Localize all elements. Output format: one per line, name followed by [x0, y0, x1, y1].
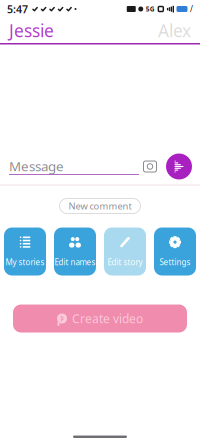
staticText: Create video [72, 310, 143, 326]
button[interactable]: My stories [4, 227, 46, 275]
staticText: 5:47 [7, 2, 28, 16]
button[interactable]: Jessie [9, 15, 54, 46]
staticText: My stories [5, 257, 44, 267]
staticText: / [190, 4, 193, 14]
button[interactable]: Create video [13, 304, 187, 332]
staticText: Settings [159, 257, 190, 267]
staticText: Message [9, 157, 64, 175]
staticText: Alex [158, 19, 191, 42]
staticText: Edit story [107, 257, 142, 267]
button[interactable]: Send [165, 152, 193, 180]
staticText: New comment [68, 200, 131, 212]
button[interactable]: Alex [158, 15, 191, 46]
staticText: Jessie [9, 19, 54, 42]
button[interactable]: Edit story [104, 227, 146, 275]
staticText: 5G [146, 5, 155, 13]
staticText: Edit names [54, 257, 95, 267]
button[interactable]: Edit names [54, 227, 96, 275]
button[interactable]: Settings [154, 227, 196, 275]
button[interactable]: Camera [139, 154, 161, 178]
button[interactable]: New comment [59, 198, 140, 213]
